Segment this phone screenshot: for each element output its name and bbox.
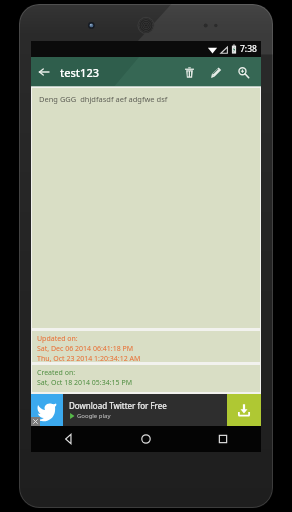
staticText: 7:38 xyxy=(240,43,257,55)
staticText: Download Twitter for Free xyxy=(69,400,167,411)
button[interactable]: Back xyxy=(31,59,57,85)
button[interactable]: Download Twitter for Free xyxy=(63,394,227,426)
button[interactable]: Deng GGG dhjdfasdf aef adgfwe dsf xyxy=(32,88,260,328)
staticText: Thu, Oct 23 2014 1:20:34:12 AM xyxy=(37,354,141,362)
staticText: Sat, Dec 06 2014 06:41:18 PM xyxy=(37,344,134,354)
button[interactable]: Updated on: xyxy=(32,331,260,362)
staticText: Google play xyxy=(77,412,111,420)
button[interactable]: Created on: xyxy=(32,365,260,392)
button[interactable]: Twitter xyxy=(31,394,63,426)
button[interactable]: Download xyxy=(227,394,261,426)
button[interactable]: Zoom xyxy=(230,57,257,87)
staticText: Updated on: xyxy=(37,334,78,344)
button[interactable]: test123 xyxy=(60,65,99,80)
button[interactable]: Recents xyxy=(184,426,261,452)
button[interactable]: Home xyxy=(107,426,184,452)
staticText: Sat, Oct 18 2014 05:34:15 PM xyxy=(37,378,133,388)
button[interactable]: Back xyxy=(31,426,107,452)
button[interactable]: Edit xyxy=(203,57,230,87)
staticText: Created on: xyxy=(37,368,76,378)
button[interactable]: Delete xyxy=(176,57,203,87)
staticText: Deng GGG dhjdfasdf aef adgfwe dsf xyxy=(39,94,168,104)
